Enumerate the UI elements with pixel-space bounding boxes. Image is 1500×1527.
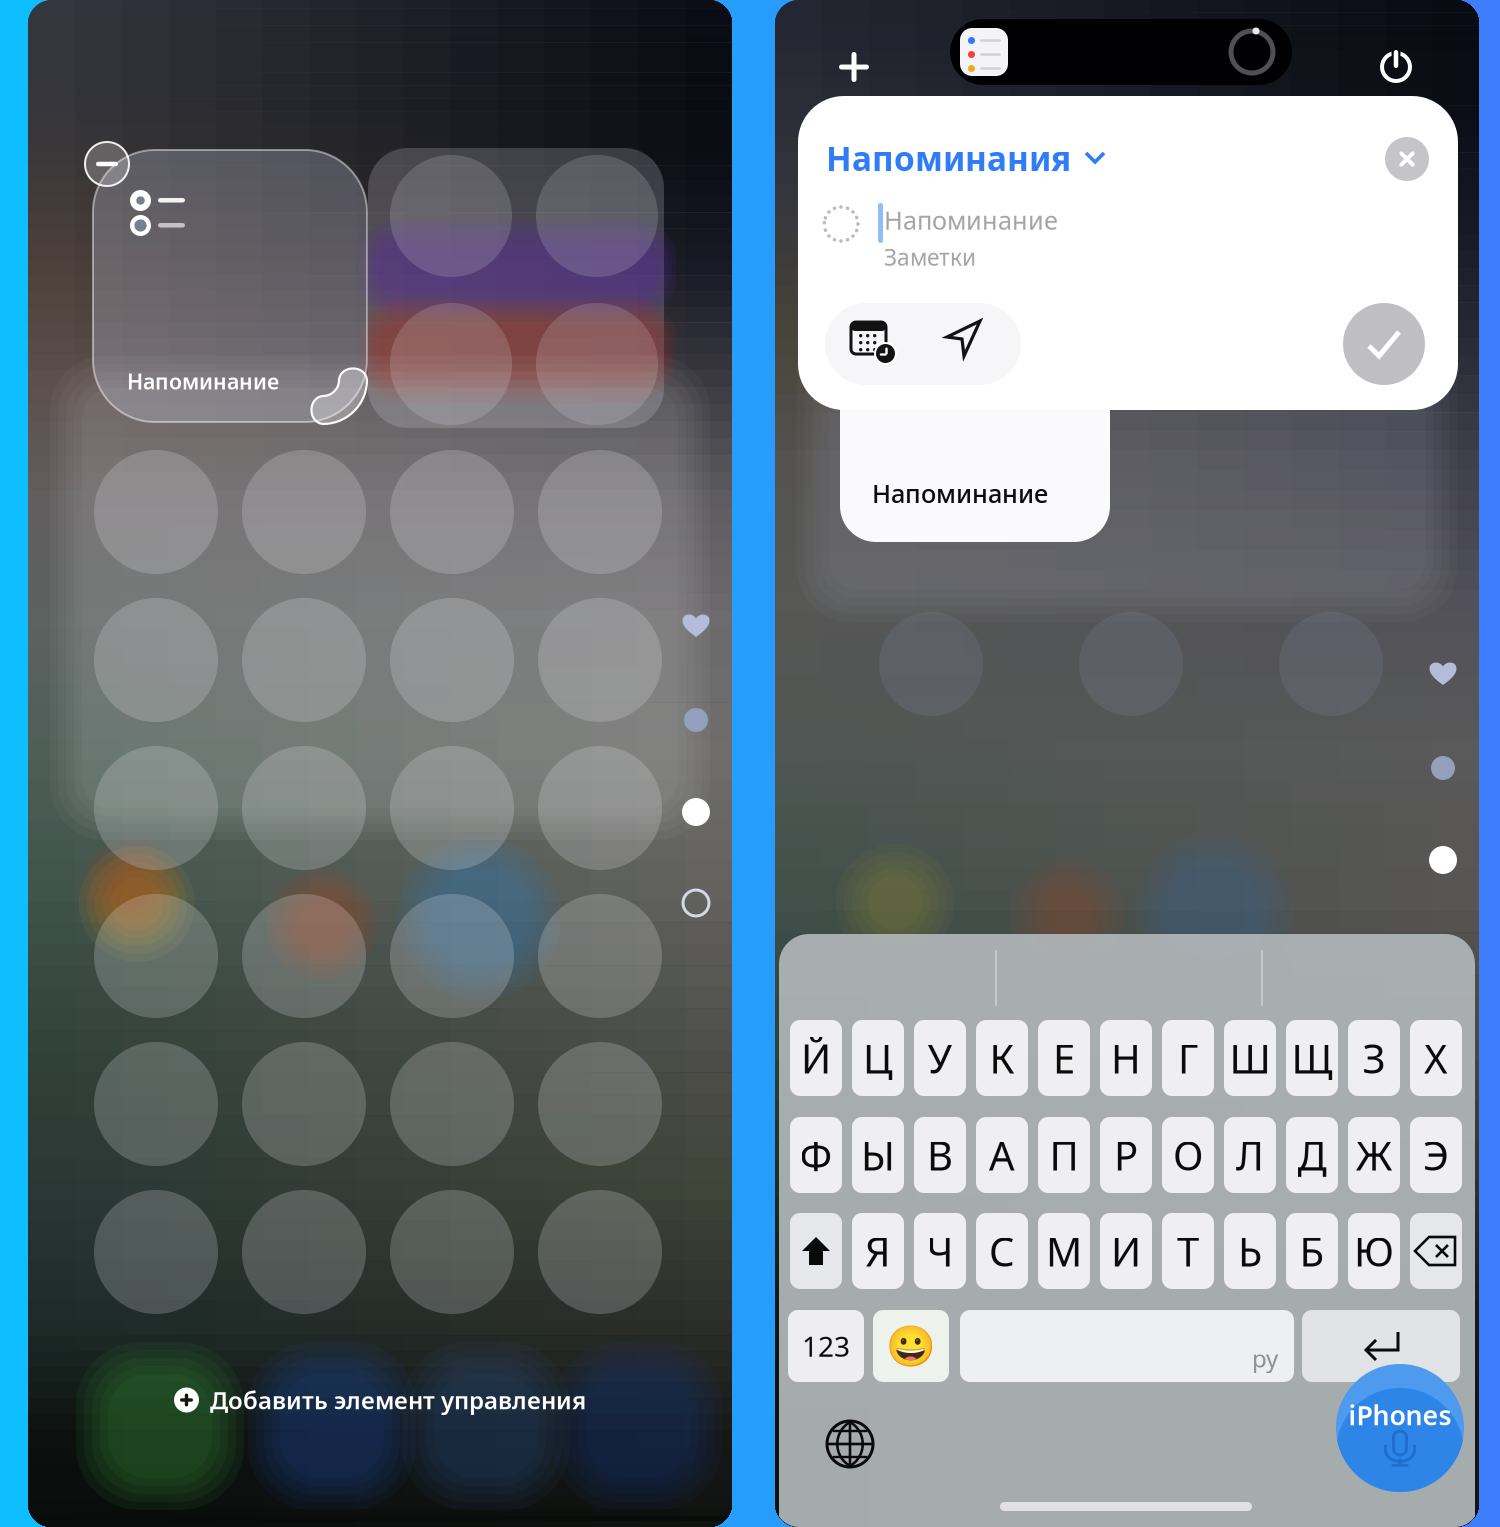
- staticText: 😀: [886, 1323, 936, 1369]
- staticText: О: [1173, 1128, 1203, 1181]
- button[interactable]: Shift: [790, 1213, 842, 1289]
- button[interactable]: Space: [960, 1310, 1294, 1382]
- button[interactable]: У: [914, 1020, 966, 1096]
- button[interactable]: Ф: [790, 1117, 842, 1193]
- button[interactable]: Dictation: [1336, 1364, 1464, 1492]
- button[interactable]: В: [914, 1117, 966, 1193]
- button[interactable]: Ш: [1224, 1020, 1276, 1096]
- staticText: У: [927, 1031, 952, 1084]
- staticText: Ф: [799, 1128, 832, 1181]
- button[interactable]: Return: [1302, 1310, 1460, 1382]
- button[interactable]: Т: [1162, 1213, 1214, 1289]
- staticText: Г: [1178, 1031, 1198, 1084]
- button[interactable]: П: [1038, 1117, 1090, 1193]
- button[interactable]: Д: [1286, 1117, 1338, 1193]
- staticText: В: [927, 1128, 953, 1181]
- button[interactable]: Л: [1224, 1117, 1276, 1193]
- button[interactable]: Ж: [1348, 1117, 1400, 1193]
- staticText: iPhones: [1348, 1397, 1451, 1433]
- button[interactable]: Add: [823, 36, 885, 98]
- button[interactable]: З: [1348, 1020, 1400, 1096]
- staticText: Добавить элемент управления: [210, 1384, 586, 1416]
- button[interactable]: К: [976, 1020, 1028, 1096]
- staticText: З: [1362, 1031, 1385, 1084]
- button[interactable]: М: [1038, 1213, 1090, 1289]
- staticText: Д: [1297, 1128, 1326, 1181]
- staticText: А: [989, 1128, 1015, 1181]
- staticText: Х: [1424, 1031, 1448, 1084]
- button[interactable]: Power: [1365, 36, 1427, 98]
- staticText: М: [1046, 1224, 1082, 1277]
- button[interactable]: Добавить элемент управления: [28, 1372, 732, 1428]
- staticText: Напоминания: [826, 136, 1071, 180]
- button[interactable]: Ы: [852, 1117, 904, 1193]
- staticText: П: [1049, 1128, 1078, 1181]
- button[interactable]: И: [1100, 1213, 1152, 1289]
- button[interactable]: Ц: [852, 1020, 904, 1096]
- staticText: Ц: [863, 1031, 893, 1084]
- staticText: Ю: [1354, 1224, 1394, 1277]
- staticText: Н: [1111, 1031, 1141, 1084]
- staticText: Напоминание: [884, 203, 1058, 237]
- button[interactable]: Ю: [1348, 1213, 1400, 1289]
- button[interactable]: О: [1162, 1117, 1214, 1193]
- button[interactable]: Ч: [914, 1213, 966, 1289]
- staticText: Ы: [861, 1128, 895, 1181]
- staticText: ру: [1252, 1342, 1278, 1374]
- staticText: Л: [1236, 1128, 1264, 1181]
- staticText: Напоминание: [127, 367, 279, 395]
- staticText: Заметки: [884, 242, 976, 272]
- button[interactable]: Я: [852, 1213, 904, 1289]
- staticText: К: [989, 1031, 1014, 1084]
- button[interactable]: Remove widget: [85, 142, 129, 186]
- staticText: Е: [1053, 1031, 1075, 1084]
- staticText: Й: [801, 1031, 831, 1084]
- button[interactable]: Close: [1385, 137, 1429, 181]
- button[interactable]: Б: [1286, 1213, 1338, 1289]
- button[interactable]: Done: [1343, 303, 1425, 385]
- staticText: С: [989, 1224, 1015, 1277]
- staticText: 123: [802, 1327, 850, 1365]
- button[interactable]: Н: [1100, 1020, 1152, 1096]
- button[interactable]: Delete: [1410, 1213, 1462, 1289]
- staticText: Напоминание: [872, 476, 1048, 510]
- staticText: Ь: [1238, 1224, 1262, 1277]
- staticText: Т: [1177, 1224, 1199, 1277]
- button[interactable]: Е: [1038, 1020, 1090, 1096]
- staticText: Ш: [1229, 1031, 1270, 1084]
- staticText: И: [1111, 1224, 1141, 1277]
- button[interactable]: Г: [1162, 1020, 1214, 1096]
- staticText: Э: [1423, 1128, 1449, 1181]
- staticText: Щ: [1291, 1031, 1332, 1084]
- button[interactable]: Location: [945, 320, 985, 360]
- button[interactable]: Э: [1410, 1117, 1462, 1193]
- button[interactable]: Switch keyboard: [824, 1418, 876, 1470]
- button[interactable]: Date and time: [851, 321, 897, 367]
- button[interactable]: Emoji: [873, 1310, 949, 1382]
- button[interactable]: Х: [1410, 1020, 1462, 1096]
- staticText: Ж: [1356, 1128, 1392, 1181]
- button[interactable]: С: [976, 1213, 1028, 1289]
- button[interactable]: Ь: [1224, 1213, 1276, 1289]
- button[interactable]: Напоминания: [826, 136, 1106, 180]
- staticText: Я: [865, 1224, 891, 1277]
- button[interactable]: Щ: [1286, 1020, 1338, 1096]
- staticText: Ч: [926, 1224, 953, 1277]
- button[interactable]: А: [976, 1117, 1028, 1193]
- staticText: Р: [1114, 1128, 1138, 1181]
- button[interactable]: 123: [788, 1310, 864, 1382]
- button[interactable]: Й: [790, 1020, 842, 1096]
- button[interactable]: Р: [1100, 1117, 1152, 1193]
- staticText: Б: [1299, 1224, 1324, 1277]
